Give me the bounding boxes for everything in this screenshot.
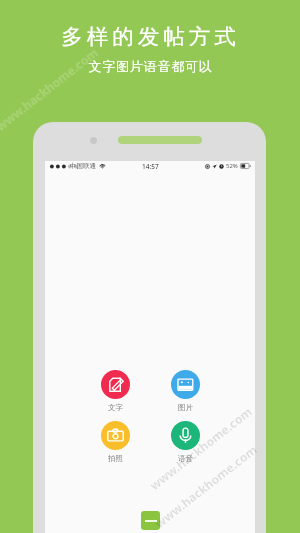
staticText: www.hackhome.com xyxy=(146,403,255,493)
staticText: 文字 xyxy=(108,403,123,412)
staticText: 14:57 xyxy=(142,162,159,171)
staticText: 中国联通 xyxy=(70,162,96,170)
button[interactable]: 拍照 xyxy=(101,421,130,463)
staticText: 语音 xyxy=(178,454,193,463)
staticText: 文字图片语音都可以 xyxy=(88,58,213,74)
staticText: 拍照 xyxy=(108,454,123,463)
button[interactable]: 图片 xyxy=(171,370,200,412)
staticText: 图片 xyxy=(178,403,193,412)
button[interactable]: Home xyxy=(141,511,160,530)
button[interactable]: 文字 xyxy=(101,370,130,412)
staticText: 52% xyxy=(226,162,238,170)
staticText: www.hackhome.com xyxy=(151,441,260,531)
staticText: 多样的发帖方式 xyxy=(61,23,240,50)
staticText: www.hackhome.com xyxy=(0,44,101,134)
button[interactable]: 语音 xyxy=(171,421,200,463)
